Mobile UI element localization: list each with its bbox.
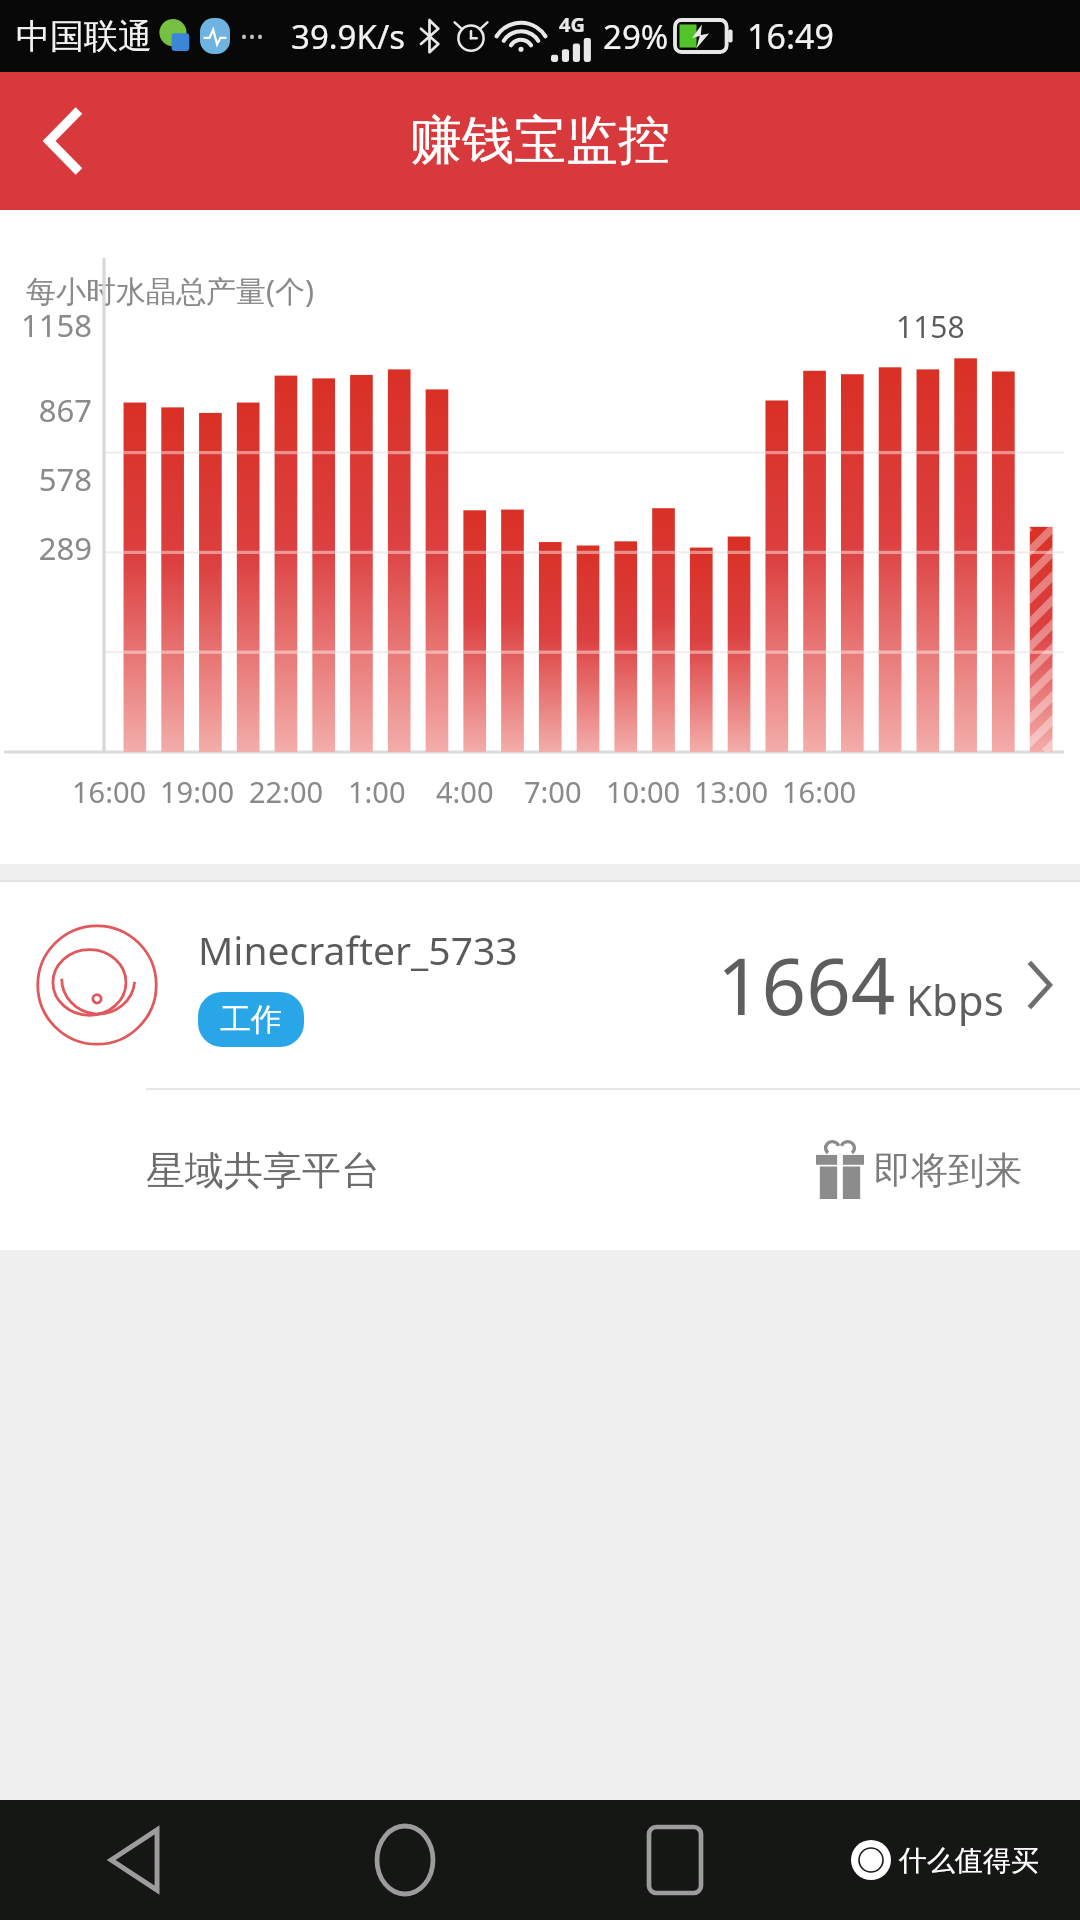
staticText: 19:00 xyxy=(160,772,235,811)
staticText: 1158 xyxy=(896,306,965,347)
staticText: 22:00 xyxy=(249,772,324,811)
staticText: 16:49 xyxy=(747,13,834,59)
staticText: 星域共享平台 xyxy=(146,1146,380,1195)
staticText: 1:00 xyxy=(348,772,406,811)
staticText: Kbps xyxy=(906,971,1004,1028)
staticText: 578 xyxy=(12,458,92,500)
staticText: 每小时水晶总产量(个) xyxy=(26,270,314,311)
staticText: 什么值得买 xyxy=(899,1843,1039,1878)
staticText: 4:00 xyxy=(436,772,494,811)
button[interactable]: Minecrafter_5733 xyxy=(0,882,1080,1088)
staticText: 7:00 xyxy=(524,772,582,811)
button[interactable]: Back xyxy=(0,1800,270,1920)
staticText: 工作 xyxy=(220,1000,282,1039)
staticText: 赚钱宝监控 xyxy=(410,108,670,174)
staticText: 29% xyxy=(603,14,669,59)
staticText: 16:00 xyxy=(72,772,147,811)
staticText: 13:00 xyxy=(694,772,769,811)
staticText: 中国联通 xyxy=(16,15,152,58)
staticText: 10:00 xyxy=(606,772,681,811)
staticText: 4G xyxy=(559,11,585,38)
button[interactable]: 星域共享平台 xyxy=(0,1090,1080,1250)
button[interactable]: Back xyxy=(14,91,114,191)
button[interactable]: Recent apps xyxy=(540,1800,810,1920)
staticText: ··· xyxy=(240,16,265,57)
staticText: 1664 xyxy=(717,932,896,1038)
staticText: Minecrafter_5733 xyxy=(198,923,518,976)
staticText: 16:00 xyxy=(782,772,857,811)
button[interactable]: Home xyxy=(270,1800,540,1920)
staticText: 289 xyxy=(12,527,92,569)
staticText: 1158 xyxy=(12,304,92,346)
staticText: 即将到来 xyxy=(874,1147,1022,1194)
staticText: 867 xyxy=(12,389,92,431)
staticText: 39.9K/s xyxy=(291,14,405,59)
